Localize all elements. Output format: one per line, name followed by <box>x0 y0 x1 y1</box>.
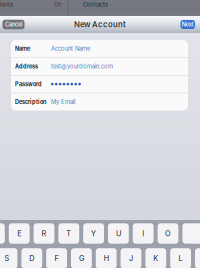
button[interactable]: Y <box>83 223 104 244</box>
staticText: test@yourdomain.com <box>51 63 113 70</box>
staticText: Y <box>91 229 96 238</box>
button[interactable]: F <box>46 248 67 268</box>
staticText: Description <box>15 98 46 105</box>
staticText: K <box>153 254 158 263</box>
button[interactable]: L <box>170 248 191 268</box>
staticText: Contacts <box>83 1 108 8</box>
staticText: Next <box>182 21 194 28</box>
staticText: New Account <box>74 20 126 29</box>
button[interactable] <box>195 248 200 268</box>
button[interactable] <box>0 223 5 244</box>
button[interactable]: K <box>145 248 166 268</box>
staticText: O <box>165 229 171 238</box>
button[interactable]: G <box>71 248 92 268</box>
button[interactable]: Name <box>11 40 188 57</box>
button[interactable]: J <box>121 248 141 268</box>
button[interactable]: H <box>96 248 117 268</box>
button[interactable]: Next <box>180 20 195 29</box>
button[interactable]: O <box>158 223 178 244</box>
button[interactable]: I <box>133 223 154 244</box>
staticText: U <box>116 229 121 238</box>
staticText: L <box>179 254 183 263</box>
staticText: G <box>79 254 84 263</box>
staticText: J <box>129 254 133 263</box>
staticText: F <box>55 254 59 263</box>
button[interactable]: D <box>21 248 42 268</box>
button[interactable]: U <box>108 223 129 244</box>
staticText: ions <box>0 1 13 8</box>
staticText: Account Name <box>51 45 90 52</box>
staticText: S <box>4 254 9 263</box>
staticText: T <box>66 229 71 238</box>
button[interactable] <box>182 223 200 244</box>
button[interactable]: E <box>9 223 30 244</box>
button[interactable]: R <box>34 223 54 244</box>
staticText: Name <box>15 45 30 52</box>
button[interactable]: Description <box>11 93 188 110</box>
staticText: H <box>104 254 109 263</box>
button[interactable]: Password <box>11 75 188 93</box>
button[interactable]: Cancel <box>2 20 24 29</box>
staticText: My Email <box>51 98 75 105</box>
staticText: On <box>54 1 61 8</box>
button[interactable]: S <box>0 248 17 268</box>
staticText: Password <box>15 81 42 87</box>
button[interactable]: T <box>58 223 79 244</box>
staticText: Address <box>15 63 38 70</box>
staticText: I <box>142 229 144 238</box>
staticText: R <box>41 229 46 238</box>
staticText: D <box>29 254 34 263</box>
staticText: Cancel <box>5 21 22 28</box>
staticText: E <box>17 229 21 238</box>
button[interactable]: Address <box>11 58 188 75</box>
